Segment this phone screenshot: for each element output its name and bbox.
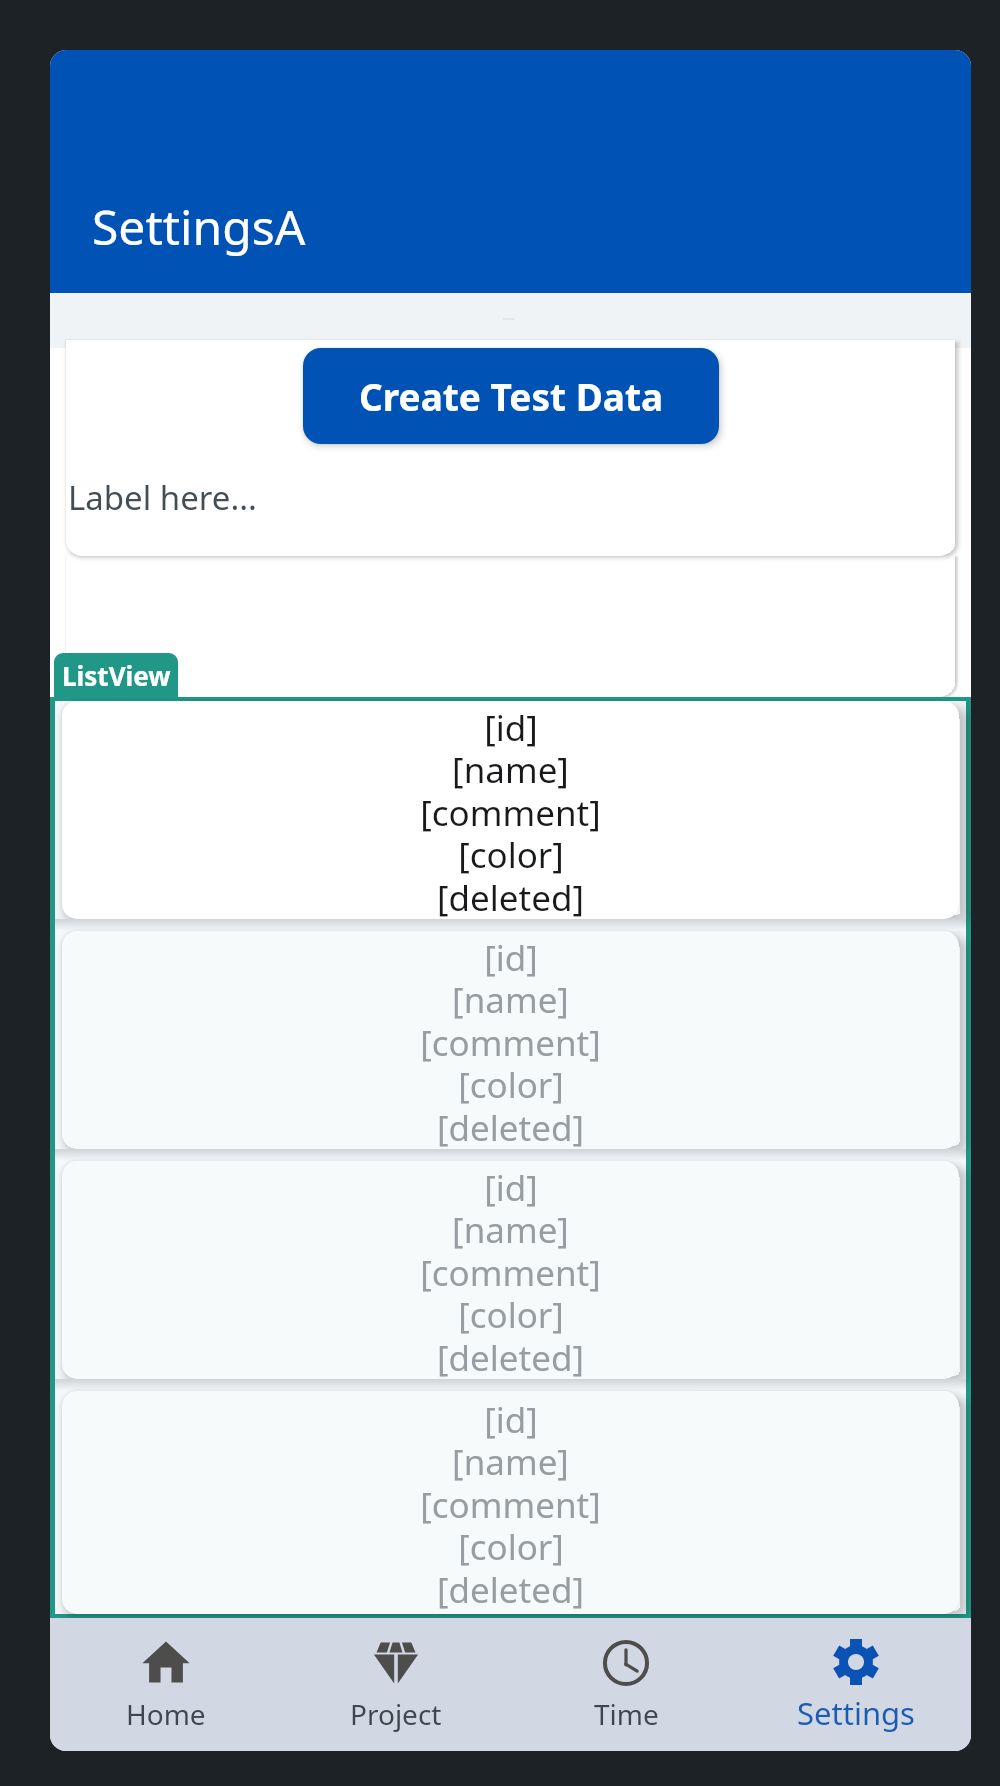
staticText: SettingsA [92, 194, 306, 259]
button[interactable]: Settings [741, 1618, 971, 1751]
staticText: [name] [452, 746, 569, 794]
staticText: [deleted] [437, 874, 584, 919]
staticText: [name] [452, 1206, 569, 1254]
button[interactable]: [id] [62, 701, 959, 919]
staticText: [color] [458, 1061, 564, 1109]
staticText: Time [594, 1695, 659, 1733]
staticText: Home [126, 1695, 206, 1733]
staticText: [comment] [420, 789, 601, 837]
button[interactable]: [id] [62, 931, 959, 1149]
button[interactable]: ListView [54, 653, 178, 698]
button[interactable]: Project [281, 1618, 511, 1751]
staticText: [name] [452, 1438, 569, 1486]
staticText: [color] [458, 1291, 564, 1339]
staticText: ListView [62, 658, 171, 693]
staticText: [deleted] [437, 1104, 584, 1149]
staticText: Project [350, 1695, 442, 1733]
staticText: Label here... [68, 475, 257, 520]
button[interactable]: Label here... [66, 450, 955, 556]
staticText: [id] [484, 1396, 538, 1444]
button[interactable]: Create Test Data [303, 348, 719, 444]
staticText: [color] [458, 831, 564, 879]
staticText: [deleted] [437, 1566, 584, 1614]
staticText: Settings [797, 1692, 915, 1734]
button[interactable]: Home [50, 1618, 281, 1751]
staticText: [id] [484, 704, 538, 752]
staticText: [deleted] [437, 1334, 584, 1379]
staticText: [comment] [420, 1249, 601, 1297]
button[interactable]: [id] [62, 1391, 959, 1614]
staticText: [comment] [420, 1019, 601, 1067]
button[interactable]: [id] [62, 1161, 959, 1379]
staticText: [id] [484, 1164, 538, 1212]
staticText: [id] [484, 934, 538, 982]
staticText: [comment] [420, 1481, 601, 1529]
button[interactable]: Time [511, 1618, 741, 1751]
staticText: Create Test Data [359, 371, 664, 421]
staticText: [name] [452, 976, 569, 1024]
staticText: [color] [458, 1523, 564, 1571]
